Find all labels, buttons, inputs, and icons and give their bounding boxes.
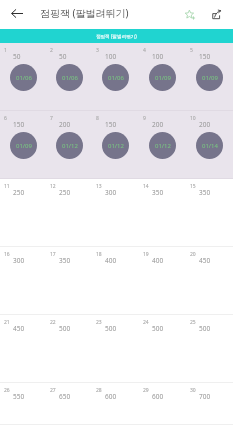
button[interactable]: 10 xyxy=(186,111,233,179)
staticText: 11 xyxy=(4,183,10,190)
staticText: 600 xyxy=(152,392,164,401)
staticText: 500 xyxy=(199,324,211,333)
button[interactable]: 28 xyxy=(92,383,139,425)
staticText: 400 xyxy=(152,256,164,265)
button[interactable]: 1 xyxy=(0,43,46,111)
staticText: 50 xyxy=(59,52,67,61)
staticText: 22 xyxy=(50,319,56,326)
staticText: 7 xyxy=(50,115,53,122)
staticText: 01/12 xyxy=(62,142,78,150)
button[interactable]: 25 xyxy=(186,315,233,383)
staticText: 01/12 xyxy=(108,142,124,150)
staticText: 21 xyxy=(4,319,10,326)
staticText: 350 xyxy=(59,256,71,265)
staticText: 500 xyxy=(59,324,71,333)
staticText: 1 xyxy=(4,47,7,54)
button[interactable]: 26 xyxy=(0,383,46,425)
staticText: 24 xyxy=(143,319,149,326)
staticText: 450 xyxy=(199,256,211,265)
staticText: 650 xyxy=(59,392,71,401)
staticText: 16 xyxy=(4,251,10,258)
button[interactable]: 3 xyxy=(92,43,139,111)
staticText: 29 xyxy=(143,387,149,394)
button[interactable]: 19 xyxy=(139,247,186,315)
staticText: 13 xyxy=(96,183,102,190)
button[interactable]: 23 xyxy=(92,315,139,383)
button[interactable]: 16 xyxy=(0,247,46,315)
button[interactable]: 2 xyxy=(46,43,92,111)
button[interactable]: 7 xyxy=(46,111,92,179)
staticText: 100 xyxy=(105,52,117,61)
staticText: 점핑잭 (팔벌려뛰기) xyxy=(96,33,137,39)
staticText: 01/06 xyxy=(108,74,124,82)
staticText: 28 xyxy=(96,387,102,394)
button[interactable]: 22 xyxy=(46,315,92,383)
staticText: 250 xyxy=(59,188,71,197)
button[interactable]: 27 xyxy=(46,383,92,425)
staticText: 01/09 xyxy=(202,74,218,82)
button[interactable]: 11 xyxy=(0,179,46,247)
button[interactable]: 21 xyxy=(0,315,46,383)
staticText: 14 xyxy=(143,183,149,190)
staticText: 30 xyxy=(190,387,196,394)
staticText: 5 xyxy=(190,47,193,54)
button[interactable]: 24 xyxy=(139,315,186,383)
staticText: 01/14 xyxy=(202,142,218,150)
button[interactable]: 17 xyxy=(46,247,92,315)
button[interactable]: 20 xyxy=(186,247,233,315)
staticText: 3 xyxy=(96,47,99,54)
staticText: 50 xyxy=(13,52,21,61)
staticText: 01/06 xyxy=(62,74,78,82)
staticText: 2 xyxy=(50,47,53,54)
staticText: 200 xyxy=(59,120,71,129)
staticText: 6 xyxy=(4,115,7,122)
staticText: 400 xyxy=(105,256,117,265)
staticText: 4 xyxy=(143,47,146,54)
staticText: 500 xyxy=(152,324,164,333)
button[interactable]: 13 xyxy=(92,179,139,247)
staticText: 550 xyxy=(13,392,25,401)
button[interactable]: 14 xyxy=(139,179,186,247)
staticText: 17 xyxy=(50,251,56,258)
button[interactable]: 18 xyxy=(92,247,139,315)
staticText: 350 xyxy=(152,188,164,197)
staticText: 18 xyxy=(96,251,102,258)
staticText: 150 xyxy=(199,52,211,61)
staticText: 600 xyxy=(105,392,117,401)
button[interactable]: 8 xyxy=(92,111,139,179)
button[interactable]: 30 xyxy=(186,383,233,425)
staticText: 19 xyxy=(143,251,149,258)
staticText: 20 xyxy=(190,251,196,258)
button[interactable]: 12 xyxy=(46,179,92,247)
staticText: 01/06 xyxy=(16,74,32,82)
staticText: 10 xyxy=(190,115,196,122)
staticText: 01/09 xyxy=(16,142,32,150)
staticText: 100 xyxy=(152,52,164,61)
staticText: 450 xyxy=(13,324,25,333)
staticText: 12 xyxy=(50,183,56,190)
staticText: 500 xyxy=(105,324,117,333)
staticText: 200 xyxy=(199,120,211,129)
button[interactable]: Share xyxy=(206,4,227,25)
staticText: 23 xyxy=(96,319,102,326)
staticText: 150 xyxy=(13,120,25,129)
staticText: 350 xyxy=(199,188,211,197)
staticText: 250 xyxy=(13,188,25,197)
staticText: 150 xyxy=(105,120,117,129)
staticText: 300 xyxy=(105,188,117,197)
staticText: 8 xyxy=(96,115,99,122)
button[interactable]: 5 xyxy=(186,43,233,111)
button[interactable]: Add to favorites xyxy=(179,4,200,25)
button[interactable]: 6 xyxy=(0,111,46,179)
staticText: 200 xyxy=(152,120,164,129)
staticText: 700 xyxy=(199,392,211,401)
button[interactable]: Back xyxy=(5,3,28,24)
button[interactable]: 15 xyxy=(186,179,233,247)
staticText: 25 xyxy=(190,319,196,326)
staticText: 27 xyxy=(50,387,56,394)
staticText: 01/09 xyxy=(155,74,171,82)
button[interactable]: 4 xyxy=(139,43,186,111)
staticText: 26 xyxy=(4,387,10,394)
button[interactable]: 29 xyxy=(139,383,186,425)
button[interactable]: 9 xyxy=(139,111,186,179)
